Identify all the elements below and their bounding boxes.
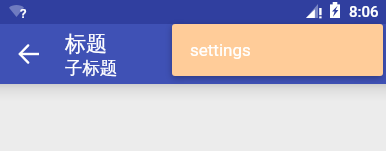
staticText: 标题 (65, 31, 107, 57)
staticText: ? (20, 5, 27, 21)
staticText: 8:06 (349, 3, 379, 21)
staticText: settings (190, 40, 251, 60)
staticText: 子标题 (65, 57, 118, 79)
button[interactable]: Back (8, 33, 50, 75)
button[interactable]: settings (172, 24, 383, 76)
